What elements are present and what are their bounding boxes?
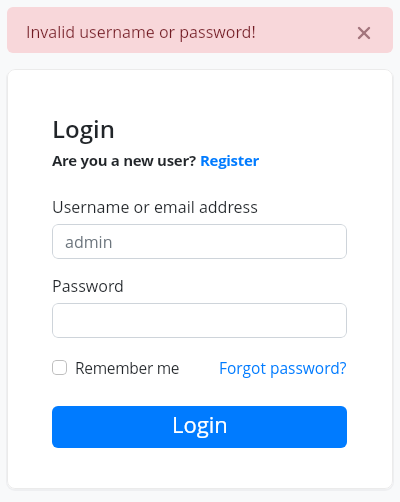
button[interactable]: Register bbox=[200, 150, 260, 170]
staticText: Forgot password? bbox=[219, 357, 347, 378]
button[interactable]: Forgot password? bbox=[219, 357, 347, 378]
staticText: admin bbox=[65, 231, 113, 253]
button[interactable] bbox=[347, 16, 381, 50]
button[interactable]: Login bbox=[52, 406, 347, 448]
staticText: Register bbox=[200, 150, 260, 170]
staticText: Login bbox=[172, 409, 228, 439]
button[interactable]: admin bbox=[52, 224, 347, 259]
staticText: Password bbox=[52, 275, 124, 297]
staticText: Are you a new user? bbox=[52, 150, 200, 170]
staticText: Username or email address bbox=[52, 196, 258, 218]
staticText: Remember me bbox=[75, 357, 180, 378]
button[interactable] bbox=[52, 303, 347, 338]
staticText: Login bbox=[52, 112, 115, 145]
button[interactable]: Remember me bbox=[52, 356, 180, 379]
staticText: Invalid username or password! bbox=[26, 21, 256, 43]
